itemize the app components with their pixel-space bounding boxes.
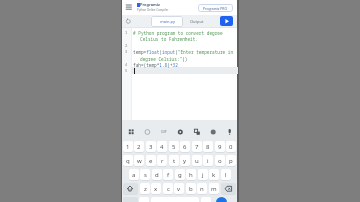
staticText: s: [144, 171, 147, 179]
staticText: 2: [125, 43, 128, 48]
button[interactable]: [216, 197, 227, 202]
staticText: 3: [149, 143, 153, 151]
button[interactable]: n: [197, 183, 207, 194]
button[interactable]: 3: [146, 141, 156, 152]
button[interactable]: j: [198, 169, 208, 180]
button[interactable]: [221, 183, 236, 194]
staticText: Output: [190, 19, 204, 24]
button[interactable]: l: [221, 169, 231, 180]
staticText: a: [132, 171, 136, 179]
staticText: g: [178, 171, 182, 179]
button[interactable]: [125, 18, 132, 25]
staticText: main.py: [160, 19, 175, 24]
button[interactable]: Output: [186, 16, 208, 27]
staticText: m: [211, 185, 217, 193]
staticText: 4: [160, 143, 164, 151]
button[interactable]: Programiz PRO: [198, 4, 233, 12]
button[interactable]: main.py: [151, 16, 183, 27]
staticText: u: [195, 157, 199, 165]
staticText: Programiz: [140, 2, 160, 7]
button[interactable]: 8: [203, 141, 213, 152]
staticText: x: [154, 185, 158, 193]
staticText: GIF: [161, 129, 167, 134]
button[interactable]: 5: [169, 141, 179, 152]
button[interactable]: [125, 4, 133, 10]
staticText: 9: [218, 143, 222, 151]
staticText: q: [126, 157, 130, 165]
button[interactable]: k: [209, 169, 219, 180]
staticText: o: [218, 157, 222, 165]
button[interactable]: q: [123, 155, 133, 166]
button[interactable]: 0: [226, 141, 236, 152]
staticText: temp=float(input("Enter temperature in: [133, 49, 234, 55]
staticText: Python Online Compiler: [137, 8, 169, 12]
staticText: l: [225, 171, 227, 179]
staticText: n: [200, 185, 204, 193]
staticText: degree Celsius:")): [140, 56, 188, 62]
button[interactable]: [123, 183, 138, 194]
staticText: 5: [172, 143, 176, 151]
button[interactable]: g: [175, 169, 185, 180]
button[interactable]: 2: [134, 141, 144, 152]
staticText: e: [149, 157, 153, 165]
staticText: 2: [137, 143, 141, 151]
button[interactable]: d: [152, 169, 162, 180]
button[interactable]: c: [163, 183, 173, 194]
staticText: f: [167, 171, 170, 179]
button[interactable]: e: [146, 155, 156, 166]
button[interactable]: t: [169, 155, 179, 166]
button[interactable]: v: [174, 183, 184, 194]
button[interactable]: s: [140, 169, 150, 180]
button[interactable]: [122, 120, 237, 137]
button[interactable]: 6: [180, 141, 190, 152]
button[interactable]: b: [186, 183, 196, 194]
staticText: 1: [126, 143, 130, 151]
staticText: y: [183, 157, 187, 165]
button[interactable]: 9: [215, 141, 225, 152]
button[interactable]: o: [215, 155, 225, 166]
staticText: 6: [183, 143, 187, 151]
button[interactable]: u: [192, 155, 202, 166]
staticText: b: [189, 185, 193, 193]
button[interactable]: x: [151, 183, 161, 194]
button[interactable]: w: [134, 155, 144, 166]
staticText: d: [155, 171, 159, 179]
button[interactable]: h: [186, 169, 196, 180]
staticText: j: [202, 171, 204, 179]
staticText: 1: [125, 30, 128, 35]
staticText: 3: [125, 49, 128, 54]
staticText: i: [207, 157, 209, 165]
button[interactable]: m: [209, 183, 219, 194]
staticText: k: [212, 171, 216, 179]
button[interactable]: [220, 16, 233, 26]
button[interactable]: 1: [123, 141, 133, 152]
staticText: w: [137, 157, 142, 165]
staticText: h: [189, 171, 193, 179]
button[interactable]: z: [140, 183, 150, 194]
button[interactable]: p: [226, 155, 236, 166]
staticText: Celsius to Fahrenheit.: [140, 36, 198, 42]
staticText: c: [167, 185, 170, 193]
staticText: 7: [195, 143, 199, 151]
button[interactable]: y: [180, 155, 190, 166]
staticText: 4: [125, 62, 128, 67]
staticText: fah=(temp*1.8)+32: [133, 62, 178, 68]
staticText: # Python program to convert degree: [133, 30, 223, 36]
button[interactable]: 7: [192, 141, 202, 152]
button[interactable]: i: [203, 155, 213, 166]
button[interactable]: 4: [157, 141, 167, 152]
button[interactable]: f: [163, 169, 173, 180]
staticText: 5: [125, 68, 128, 73]
staticText: t: [173, 157, 176, 165]
staticText: z: [144, 185, 147, 193]
staticText: Programiz PRO: [203, 6, 228, 11]
button[interactable]: a: [129, 169, 139, 180]
button[interactable]: r: [157, 155, 167, 166]
staticText: v: [177, 185, 181, 193]
staticText: 8: [206, 143, 210, 151]
